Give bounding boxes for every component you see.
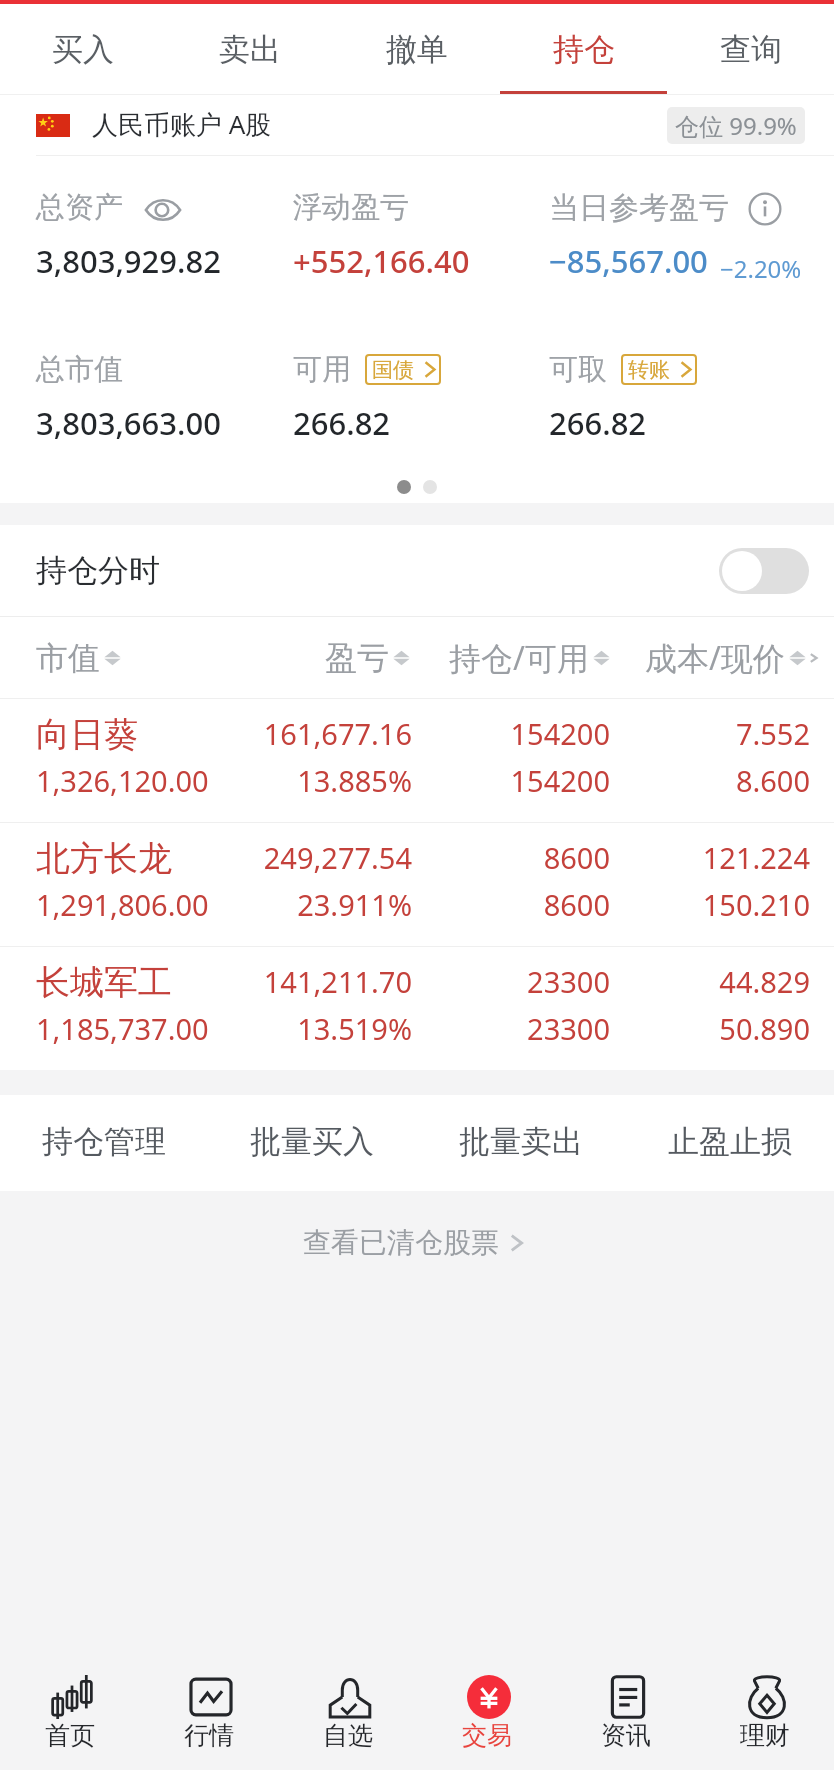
button[interactable]: 北方长龙 — [0, 822, 834, 946]
staticText: 向日葵 — [36, 713, 138, 756]
button[interactable]: Toggle intraday chart — [719, 548, 809, 594]
staticText: 266.82 — [293, 402, 391, 444]
button[interactable]: 批量买入 — [208, 1095, 416, 1191]
staticText: 盈亏 — [325, 638, 389, 678]
button[interactable]: 转账 — [621, 354, 697, 385]
staticText: 44.829 — [608, 962, 810, 1001]
button[interactable]: 卖出 — [166, 4, 333, 95]
button[interactable]: 向日葵 — [0, 698, 834, 822]
staticText: 249,277.54 — [194, 838, 412, 877]
button[interactable]: More columns — [806, 650, 822, 666]
button[interactable]: 持仓管理 — [0, 1095, 208, 1191]
button[interactable]: 国债 — [365, 354, 441, 385]
staticText: 止盈止损 — [668, 1122, 792, 1161]
button[interactable]: 仓位 99.9% — [667, 107, 805, 144]
staticText: 行情 — [184, 1720, 234, 1751]
button[interactable]: 长城军工 — [0, 946, 834, 1070]
staticText: 150.210 — [608, 885, 810, 924]
button[interactable]: 自选 — [278, 1640, 417, 1770]
staticText: 总资产 — [36, 189, 123, 226]
staticText: 首页 — [45, 1720, 95, 1751]
staticText: 转账 — [628, 357, 670, 383]
staticText: 总市值 — [36, 351, 123, 388]
staticText: 50.890 — [608, 1009, 810, 1048]
staticText: 141,211.70 — [194, 962, 412, 1001]
staticText: 持仓分时 — [36, 551, 160, 590]
staticText: 持仓 — [553, 30, 615, 69]
staticText: 121.224 — [608, 838, 810, 877]
staticText: 13.519% — [194, 1009, 412, 1048]
staticText: 仓位 99.9% — [675, 109, 797, 142]
button[interactable]: 交易 — [417, 1640, 556, 1770]
button[interactable]: 首页 — [0, 1640, 139, 1770]
staticText: 市值 — [36, 638, 100, 678]
button[interactable]: Toggle amount visibility — [145, 197, 181, 223]
staticText: 8600 — [410, 885, 610, 924]
staticText: −85,567.00 — [549, 240, 708, 282]
staticText: 23300 — [410, 962, 610, 1001]
button[interactable]: 撤单 — [333, 4, 500, 95]
staticText: 北方长龙 — [36, 837, 172, 880]
staticText: 撤单 — [386, 30, 448, 69]
staticText: +552,166.40 — [293, 240, 470, 282]
staticText: 8600 — [410, 838, 610, 877]
button[interactable]: 查看已清仓股票 — [0, 1225, 834, 1260]
staticText: 卖出 — [219, 30, 281, 69]
staticText: 3,803,929.82 — [36, 240, 221, 282]
staticText: 长城军工 — [36, 961, 172, 1004]
staticText: 可用 — [293, 351, 351, 388]
staticText: 3,803,663.00 — [36, 402, 221, 444]
staticText: 可取 — [549, 351, 607, 388]
staticText: 成本/现价 — [645, 636, 785, 680]
staticText: 154200 — [410, 714, 610, 753]
staticText: 1,185,737.00 — [36, 1009, 209, 1048]
button[interactable]: 资讯 — [556, 1640, 695, 1770]
staticText: 持仓管理 — [42, 1122, 166, 1161]
staticText: 理财 — [740, 1720, 790, 1751]
button[interactable]: 查询 — [667, 4, 834, 95]
staticText: 7.552 — [608, 714, 810, 753]
button[interactable]: 成本/现价 — [645, 636, 807, 680]
staticText: 浮动盈亏 — [293, 189, 409, 226]
button[interactable]: 市值 — [36, 638, 122, 678]
staticText: 批量买入 — [250, 1122, 374, 1161]
button[interactable]: 理财 — [695, 1640, 834, 1770]
button[interactable]: 持仓 — [500, 4, 667, 95]
button[interactable]: 止盈止损 — [625, 1095, 834, 1191]
staticText: 1,326,120.00 — [36, 761, 209, 800]
button[interactable]: 批量卖出 — [416, 1095, 625, 1191]
button[interactable]: Info about daily P/L — [749, 193, 781, 225]
staticText: 8.600 — [608, 761, 810, 800]
button[interactable]: 盈亏 — [325, 638, 411, 678]
staticText: 266.82 — [549, 402, 647, 444]
staticText: 23300 — [410, 1009, 610, 1048]
staticText: 批量卖出 — [459, 1122, 583, 1161]
button[interactable]: 持仓/可用 — [449, 636, 611, 680]
staticText: 13.885% — [194, 761, 412, 800]
staticText: 持仓/可用 — [449, 636, 589, 680]
staticText: 23.911% — [194, 885, 412, 924]
staticText: 161,677.16 — [194, 714, 412, 753]
staticText: 1,291,806.00 — [36, 885, 209, 924]
staticText: −2.20% — [720, 252, 802, 285]
staticText: 资讯 — [601, 1720, 651, 1751]
staticText: 人民币账户 A股 — [92, 106, 272, 142]
staticText: 查看已清仓股票 — [303, 1225, 499, 1260]
button[interactable]: 买入 — [0, 4, 166, 95]
staticText: 当日参考盈亏 — [549, 189, 729, 227]
staticText: 买入 — [52, 30, 114, 69]
button[interactable]: 行情 — [139, 1640, 278, 1770]
staticText: 154200 — [410, 761, 610, 800]
staticText: 自选 — [323, 1720, 373, 1751]
staticText: 国债 — [372, 357, 414, 383]
staticText: 交易 — [462, 1720, 512, 1751]
staticText: 查询 — [720, 30, 782, 69]
